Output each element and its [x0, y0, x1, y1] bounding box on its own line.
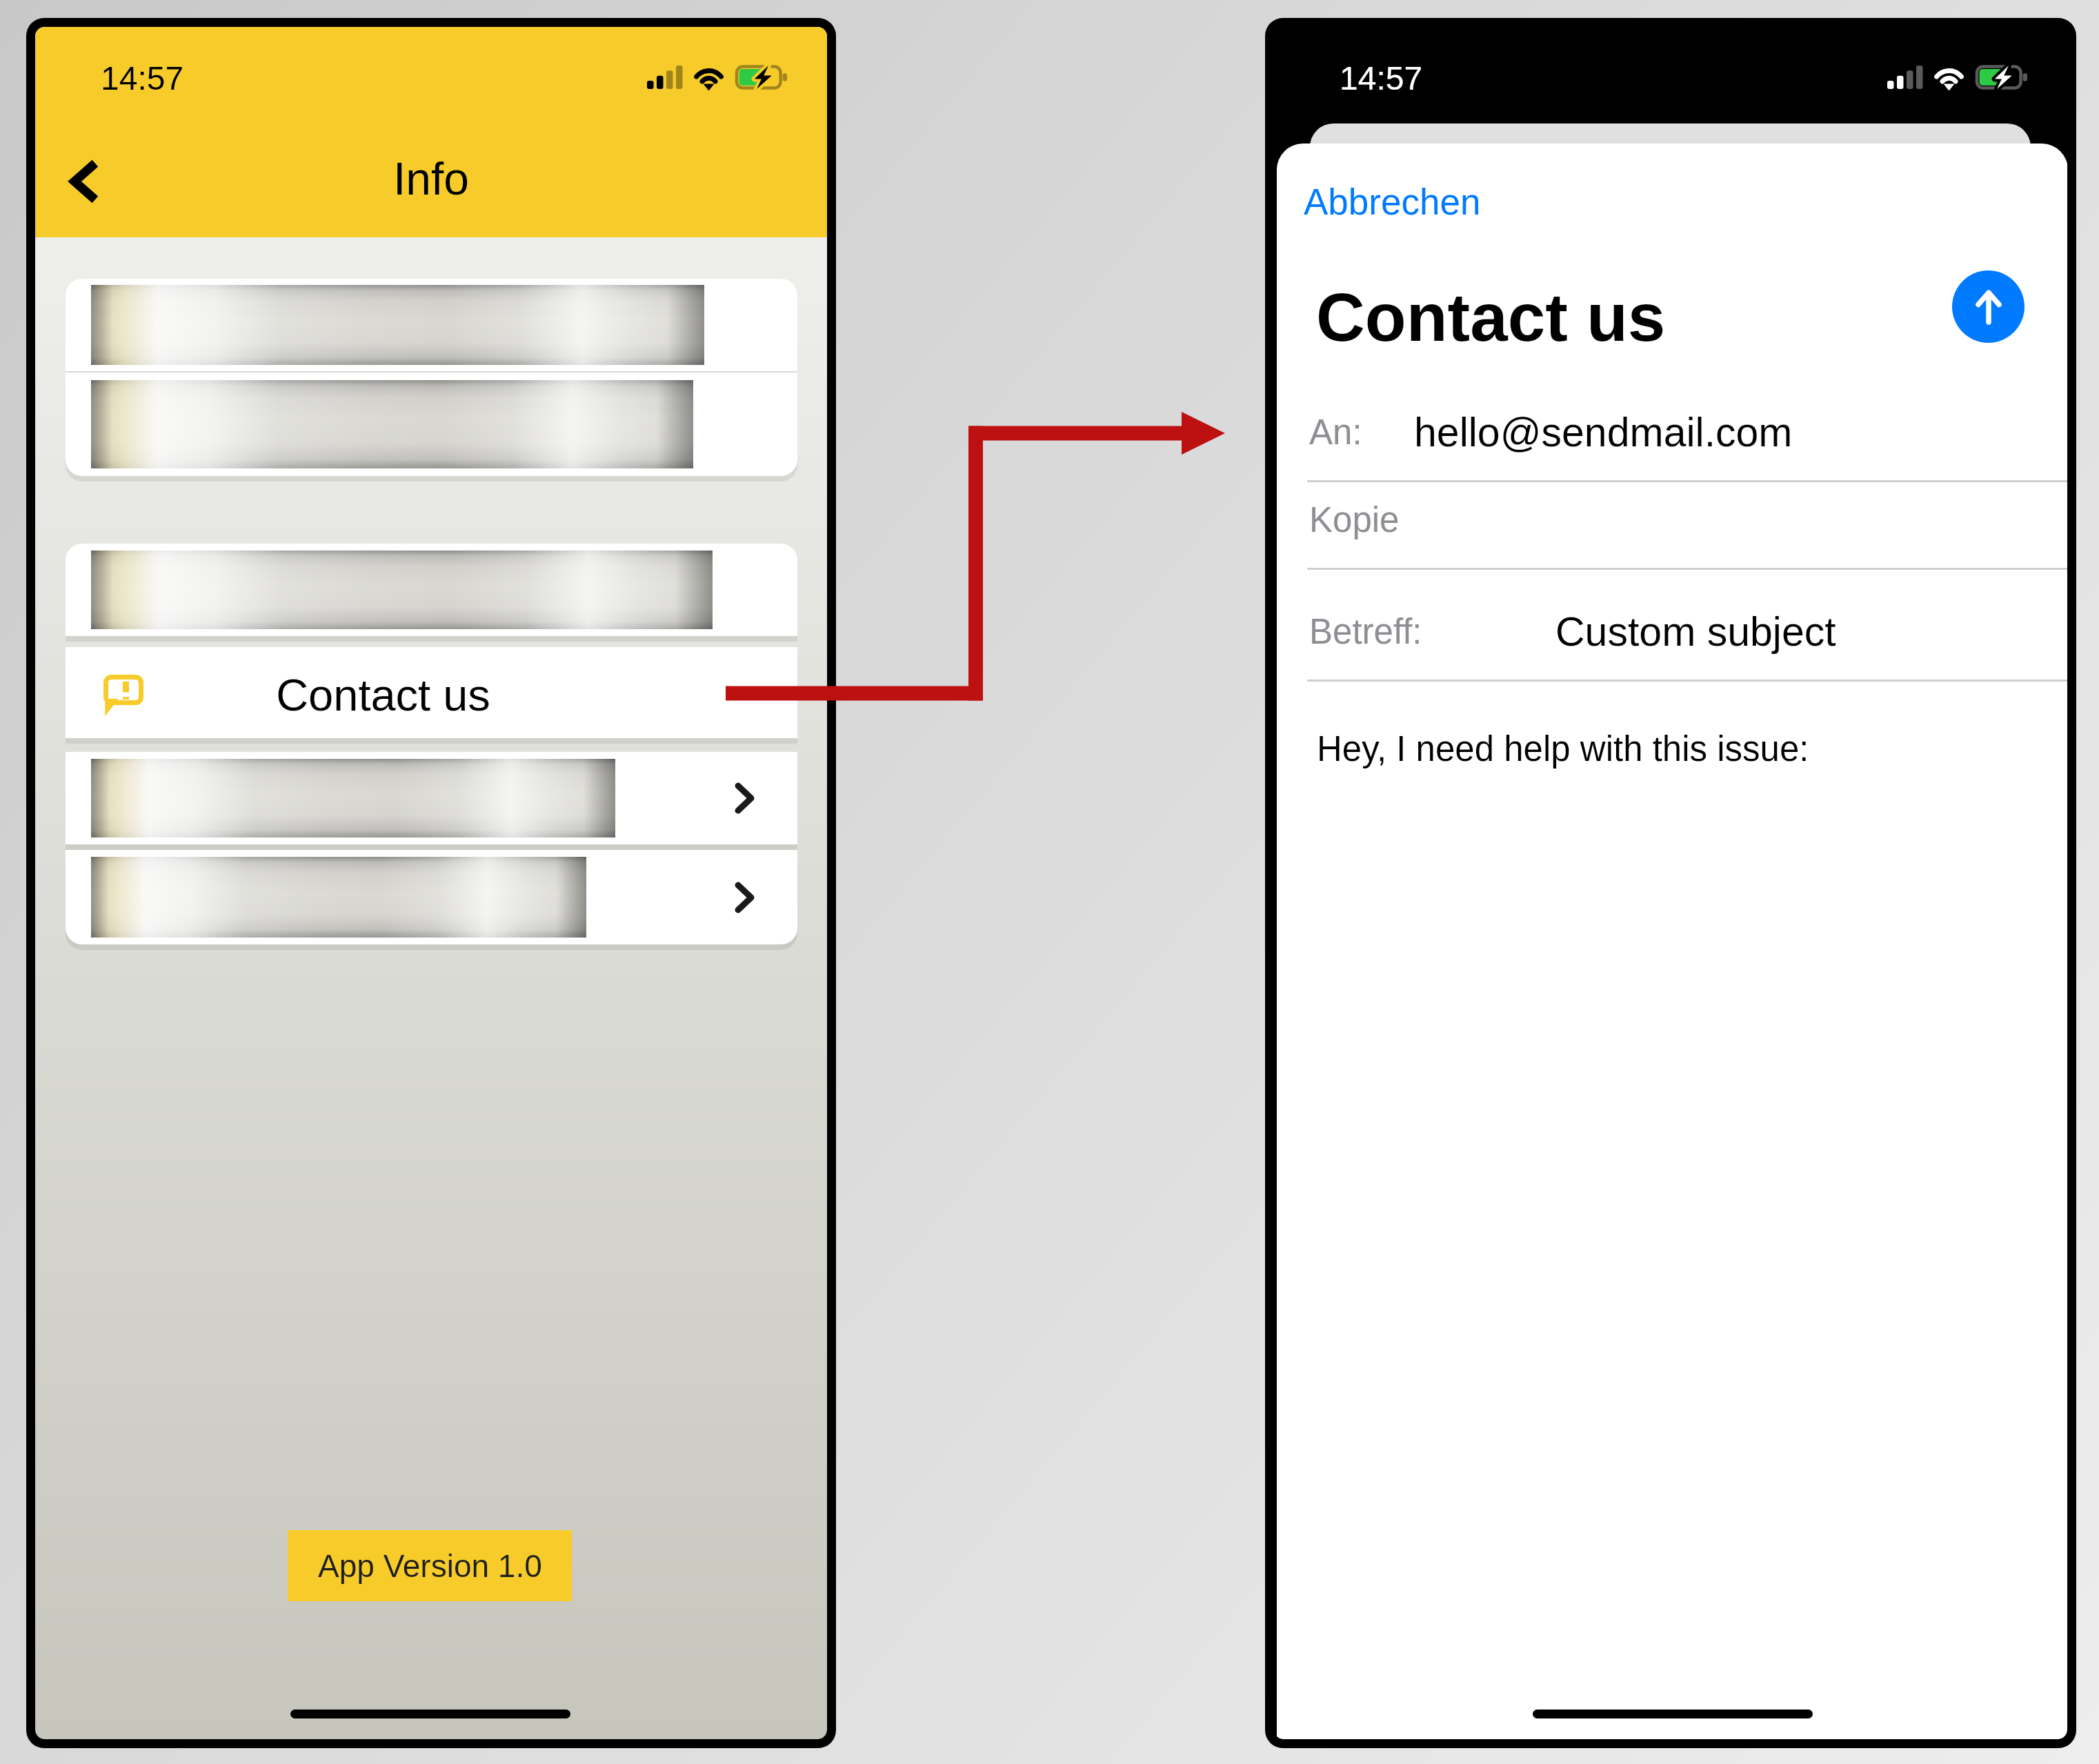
button[interactable]: Kopie: [1277, 482, 2067, 570]
staticText: Abbrechen: [1304, 181, 1481, 222]
button[interactable]: Open: [722, 875, 767, 920]
button[interactable]: [66, 373, 797, 476]
staticText: An:: [1309, 413, 1362, 452]
staticText: Contact us: [1316, 279, 1666, 355]
button[interactable]: Betreff:: [1277, 594, 2067, 682]
button[interactable]: An:: [1277, 395, 2067, 482]
staticText: hello@sendmail.com: [1414, 410, 1793, 455]
staticText: App Version 1.0: [318, 1548, 542, 1583]
button[interactable]: App Version 1.0: [288, 1530, 572, 1601]
staticText: Betreff:: [1309, 612, 1422, 651]
staticText: Contact us: [66, 670, 749, 720]
button[interactable]: Open: [722, 775, 767, 821]
staticText: Custom subject: [1555, 609, 1836, 655]
button[interactable]: [66, 279, 797, 371]
staticText: Info: [35, 153, 827, 204]
button[interactable]: Open: [66, 850, 797, 944]
button[interactable]: [66, 544, 797, 636]
button[interactable]: Open: [66, 752, 797, 844]
button[interactable]: Back: [52, 146, 115, 217]
button[interactable]: Abbrechen: [1295, 175, 1489, 229]
staticText: 14:57: [1340, 60, 1423, 97]
staticText: Hey, I need help with this issue:: [1317, 729, 1809, 769]
button[interactable]: Send: [1952, 270, 2025, 343]
staticText: Kopie: [1309, 500, 1400, 539]
button[interactable]: Contact us: [66, 647, 797, 738]
staticText: 14:57: [101, 60, 184, 97]
